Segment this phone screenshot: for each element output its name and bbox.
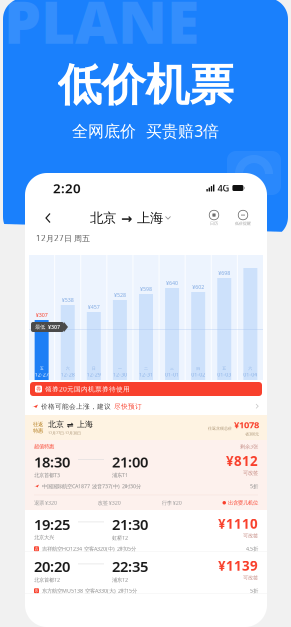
staticText: 19:25: [34, 515, 70, 534]
staticText: ¥1078: [234, 418, 259, 431]
staticText: 东: [34, 588, 38, 593]
staticText: 超值特惠: [34, 443, 54, 450]
staticText: ¥812: [226, 452, 258, 470]
staticText: 可改签: [243, 470, 258, 476]
staticText: 北京 → 上海: [90, 210, 163, 226]
staticText: 五: [40, 366, 44, 371]
staticText: 01-01: [165, 371, 179, 378]
button[interactable]: ¥698: [212, 255, 237, 380]
button[interactable]: 券: [25, 380, 267, 398]
staticText: 最低: [35, 324, 45, 330]
staticText: 12月27日 周五: [36, 233, 90, 244]
staticText: 往返含税总价: [208, 426, 232, 431]
staticText: 4.5折: [246, 545, 258, 552]
button[interactable]: ¥457: [81, 255, 106, 380]
staticText: 东方航空MU5138 空客A330(大) 2时15分: [42, 587, 137, 594]
staticText: 可改签: [243, 532, 258, 539]
staticText: 一: [118, 366, 122, 371]
staticText: 特惠: [33, 427, 43, 434]
staticText: 5折: [250, 483, 258, 490]
staticText: 北京 ⇌ 上海: [48, 419, 93, 429]
staticText: 18:30: [34, 452, 70, 472]
button[interactable]: ¥307: [29, 255, 54, 380]
staticText: 虹桥T2: [112, 534, 128, 541]
staticText: ¥457: [88, 303, 100, 310]
staticText: 12-28: [61, 371, 75, 378]
staticText: ¥307: [36, 311, 48, 318]
staticText: 三: [170, 366, 174, 371]
staticText: 4G: [217, 182, 229, 194]
staticText: 低价提醒: [235, 221, 251, 226]
staticText: 二: [144, 366, 148, 371]
staticText: 21:00: [112, 452, 148, 472]
button[interactable]: 北京 → 上海: [90, 205, 171, 231]
staticText: 吉祥航空HO1234 空客A320(中) 2时05分: [42, 545, 136, 552]
staticText: ¥538: [62, 296, 74, 303]
staticText: 浦东T1: [112, 472, 128, 479]
button[interactable]: 往返: [25, 415, 267, 440]
staticText: ¥528: [114, 291, 126, 298]
staticText: 券: [36, 386, 41, 392]
button[interactable]: ¥598: [133, 255, 159, 380]
staticText: 21:30: [112, 515, 148, 534]
staticText: 全网底价 买贵赔3倍: [72, 120, 219, 141]
staticText: ¥1139: [218, 557, 258, 574]
staticText: 四: [196, 366, 200, 371]
staticText: 01-03: [217, 371, 231, 378]
staticText: ¥602: [192, 283, 204, 290]
staticText: 北京首都T2: [34, 576, 60, 583]
button[interactable]: 超值特惠: [25, 440, 267, 510]
staticText: 领券20元国内机票券待使用: [45, 385, 130, 393]
button[interactable]: ¥538: [55, 255, 80, 380]
staticText: 低价机票: [57, 58, 233, 112]
staticText: 价格可能会上涨，建议: [41, 402, 111, 411]
staticText: 12-31: [139, 371, 153, 378]
staticText: 省300元: [245, 431, 259, 437]
staticText: 5折: [250, 587, 258, 594]
staticText: 22:35: [112, 557, 148, 576]
staticText: 可改签: [243, 574, 258, 581]
staticText: 北京首都T3: [34, 472, 60, 479]
staticText: ¥1110: [218, 515, 258, 532]
button[interactable]: ¥640: [159, 255, 185, 380]
staticText: 2:20: [53, 179, 81, 197]
staticText: ¥640: [166, 279, 178, 286]
staticText: 剩余3张: [240, 443, 258, 450]
staticText: ¥307: [48, 323, 60, 331]
staticText: 退票 ¥320: [34, 499, 57, 506]
staticText: 浦东T2: [112, 576, 128, 583]
staticText: 12-30: [113, 371, 127, 378]
staticText: 12月27日-12月30日: [48, 430, 81, 436]
button[interactable]: ¥602: [185, 255, 211, 380]
button[interactable]: 返回: [38, 205, 58, 231]
staticText: 五: [222, 366, 226, 371]
staticText: 吉: [34, 546, 38, 551]
staticText: 改签 ¥320: [98, 499, 121, 506]
button[interactable]: 日历: [203, 205, 225, 231]
staticText: 日历: [210, 221, 218, 226]
button[interactable]: [238, 255, 263, 380]
staticText: 六: [66, 366, 70, 371]
staticText: 12-29: [87, 371, 101, 378]
staticText: 日: [92, 366, 96, 371]
staticText: 01-04: [243, 371, 257, 378]
button[interactable]: 20:20: [25, 552, 267, 594]
staticText: 往返: [33, 421, 43, 427]
staticText: 尽快预订: [114, 402, 142, 411]
button[interactable]: 低价提醒: [232, 205, 254, 231]
staticText: 北京大兴: [34, 534, 54, 541]
button[interactable]: 价格可能会上涨，建议: [25, 398, 267, 415]
staticText: 20:20: [34, 557, 70, 576]
staticText: 中国国际航空CA1877 波音737(中) 2时30分: [42, 483, 141, 490]
staticText: PLANE: [4, 0, 199, 60]
staticText: ¥698: [218, 269, 230, 276]
staticText: 六: [248, 366, 252, 371]
staticText: 12-27: [35, 371, 49, 378]
button[interactable]: 19:25: [25, 510, 267, 552]
staticText: 出含婴儿机位: [228, 499, 258, 506]
staticText: 行李 ¥20: [162, 499, 182, 506]
staticText: ¥598: [140, 285, 152, 292]
button[interactable]: ¥528: [107, 255, 133, 380]
staticText: 01-02: [191, 371, 205, 378]
